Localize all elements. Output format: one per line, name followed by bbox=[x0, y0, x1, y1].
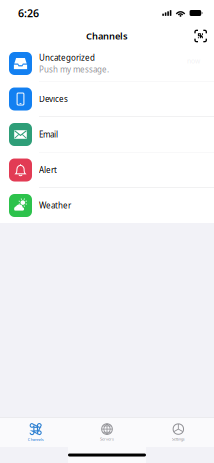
button[interactable]: Settings bbox=[143, 418, 214, 447]
button[interactable]: Alert bbox=[0, 152, 214, 188]
staticText: Channels bbox=[86, 30, 128, 42]
staticText: Settings bbox=[172, 436, 185, 442]
staticText: Email bbox=[39, 129, 58, 140]
button[interactable]: Servers bbox=[71, 418, 143, 447]
staticText: 6:26 bbox=[18, 6, 39, 20]
staticText: Weather bbox=[39, 200, 71, 211]
staticText: Channels bbox=[28, 437, 44, 442]
staticText: now bbox=[187, 56, 200, 65]
staticText: Push my message. bbox=[39, 64, 109, 75]
button[interactable]: Scan QR code bbox=[188, 27, 214, 45]
button[interactable]: Email bbox=[0, 117, 214, 152]
staticText: Devices bbox=[39, 94, 68, 104]
staticText: Alert bbox=[39, 165, 57, 175]
button[interactable]: Weather bbox=[0, 188, 214, 223]
button[interactable]: Devices bbox=[0, 81, 214, 117]
staticText: Uncategorized bbox=[39, 52, 95, 63]
button[interactable]: Uncategorized bbox=[0, 46, 214, 81]
staticText: Servers bbox=[100, 436, 114, 442]
button[interactable]: Channels bbox=[0, 418, 71, 447]
